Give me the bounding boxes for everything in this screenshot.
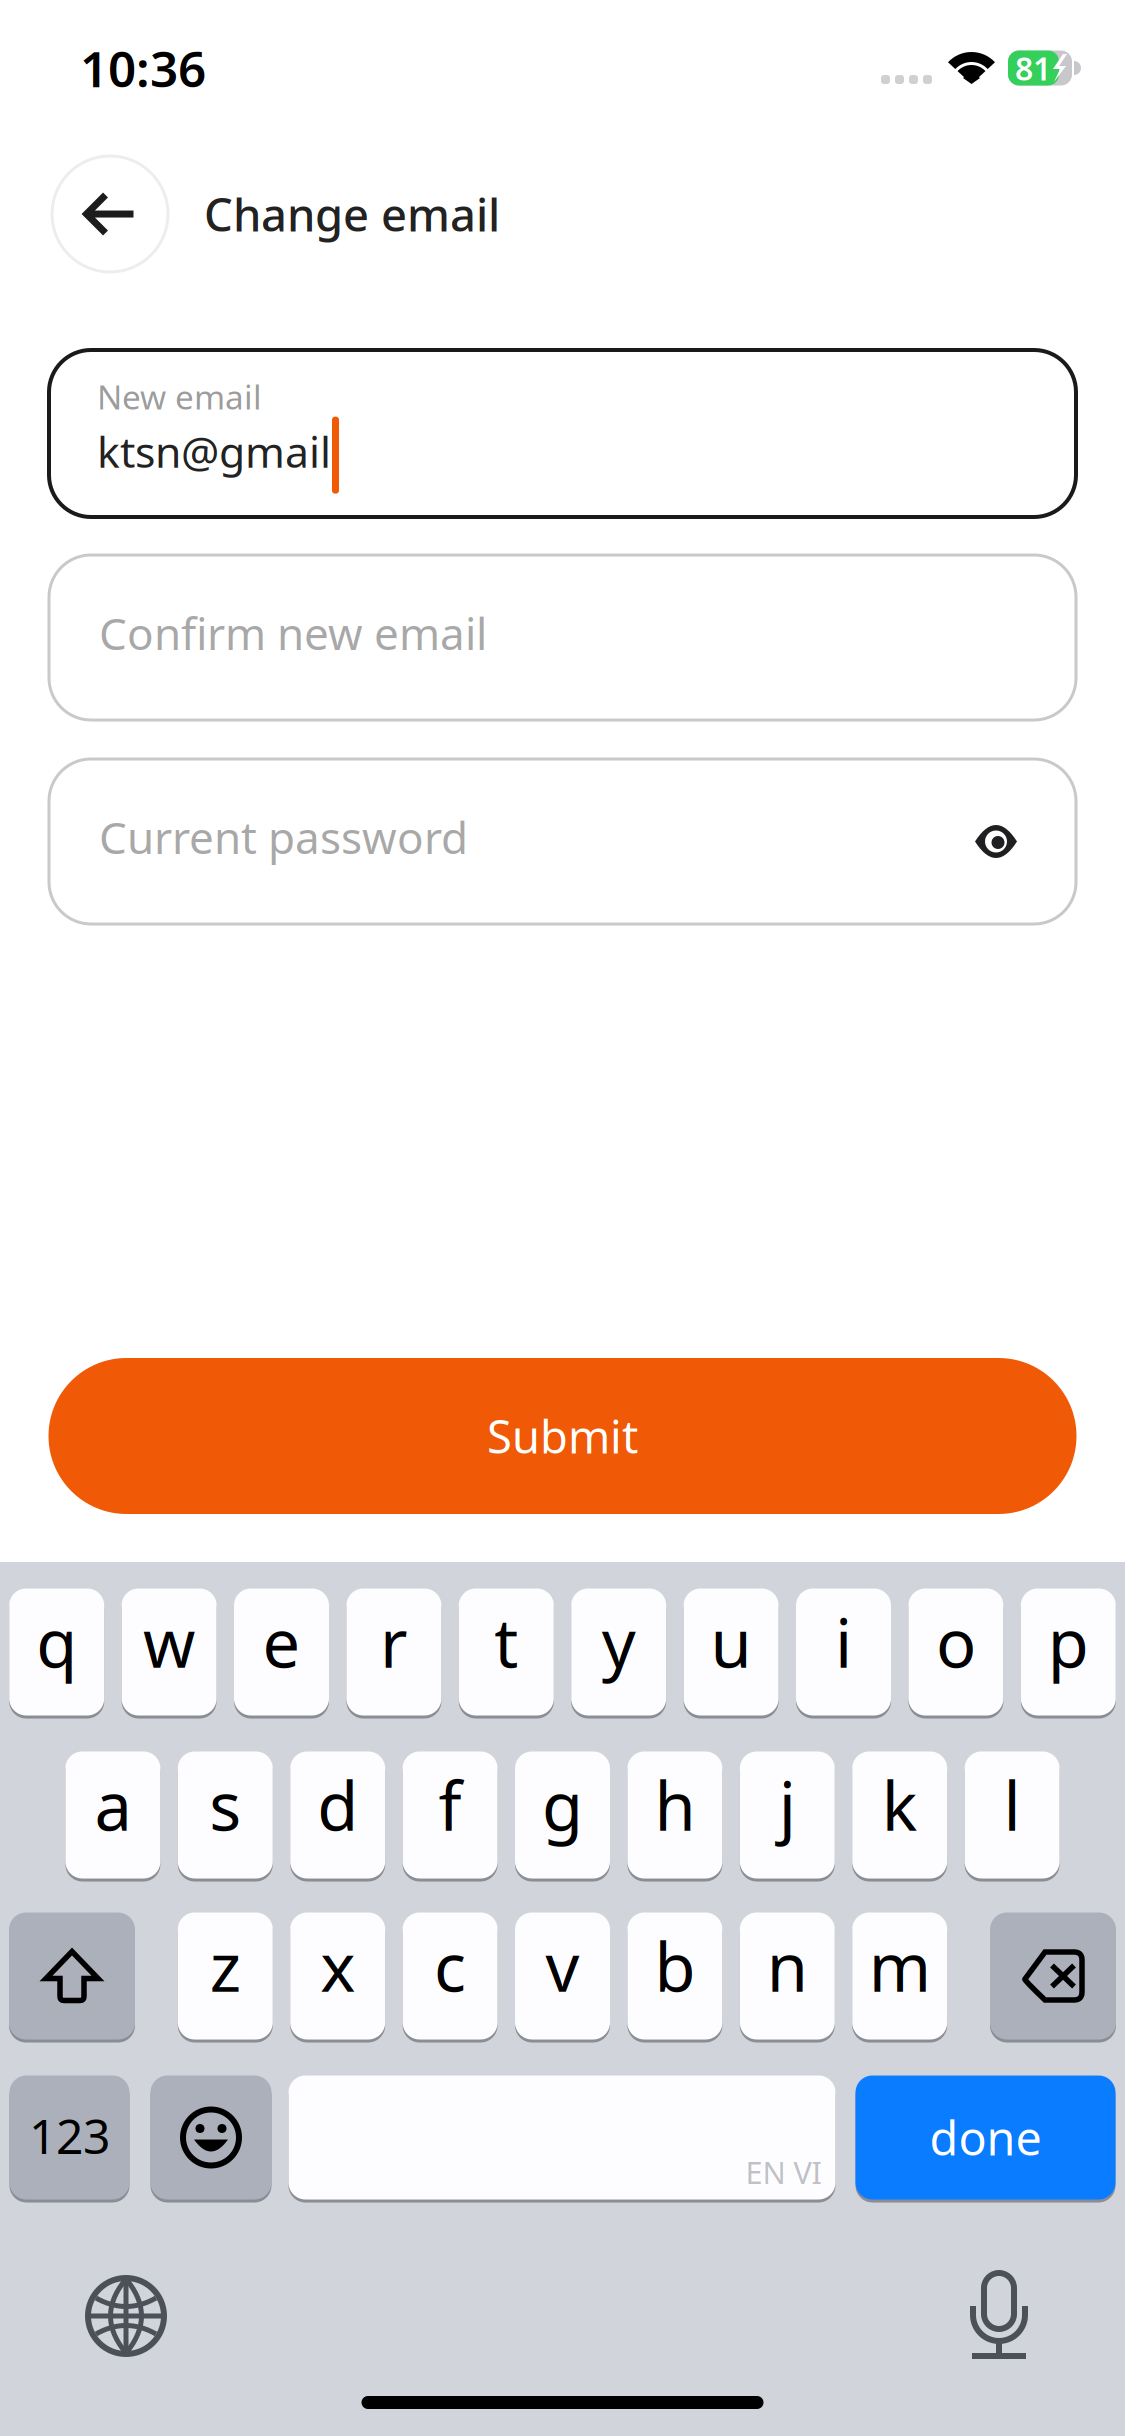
- staticText: l: [1004, 1761, 1021, 1849]
- staticText: done: [929, 2106, 1041, 2168]
- button[interactable]: q: [9, 1587, 104, 1717]
- button[interactable]: z: [178, 1911, 273, 2041]
- button[interactable]: d: [290, 1750, 385, 1880]
- button[interactable]: u: [684, 1587, 779, 1717]
- button[interactable]: v: [515, 1911, 610, 2041]
- button[interactable]: p: [1021, 1587, 1116, 1717]
- staticText: i: [835, 1598, 852, 1686]
- button[interactable]: m: [852, 1911, 947, 2041]
- button[interactable]: j: [740, 1750, 835, 1880]
- staticText: y: [602, 1598, 636, 1686]
- button[interactable]: Delete: [990, 1911, 1116, 2041]
- button[interactable]: Submit: [48, 1358, 1076, 1514]
- button[interactable]: 123: [9, 2074, 129, 2201]
- button[interactable]: x: [290, 1911, 385, 2041]
- button[interactable]: g: [515, 1750, 610, 1880]
- staticText: 81: [1015, 47, 1051, 89]
- staticText: ktsn@gmail: [97, 423, 331, 480]
- staticText: f: [439, 1761, 462, 1849]
- button[interactable]: l: [965, 1750, 1060, 1880]
- button[interactable]: Dictate: [970, 2273, 1028, 2359]
- staticText: c: [434, 1922, 466, 2010]
- staticText: a: [94, 1761, 131, 1849]
- button[interactable]: w: [122, 1587, 217, 1717]
- staticText: m: [869, 1922, 931, 2010]
- button[interactable]: e: [234, 1587, 329, 1717]
- staticText: 10:36: [80, 35, 206, 101]
- staticText: EN VI: [745, 2152, 821, 2192]
- button[interactable]: y: [571, 1587, 666, 1717]
- button[interactable]: done: [855, 2074, 1115, 2201]
- button[interactable]: Shift: [9, 1911, 135, 2041]
- staticText: e: [262, 1598, 300, 1686]
- staticText: r: [380, 1598, 408, 1686]
- button[interactable]: Space: [288, 2074, 835, 2201]
- staticText: k: [882, 1761, 918, 1849]
- button[interactable]: r: [346, 1587, 441, 1717]
- button[interactable]: Show password: [963, 808, 1029, 874]
- staticText: New email: [97, 374, 262, 419]
- staticText: u: [711, 1598, 752, 1686]
- staticText: d: [317, 1761, 358, 1849]
- staticText: q: [36, 1598, 77, 1686]
- staticText: n: [767, 1922, 808, 2010]
- button[interactable]: k: [852, 1750, 947, 1880]
- staticText: Confirm new email: [99, 604, 487, 662]
- staticText: o: [936, 1598, 976, 1686]
- staticText: z: [210, 1922, 241, 2010]
- staticText: h: [654, 1761, 695, 1849]
- staticText: 123: [29, 2104, 110, 2167]
- button[interactable]: h: [627, 1750, 722, 1880]
- staticText: b: [654, 1922, 695, 2010]
- staticText: Change email: [204, 184, 500, 244]
- button[interactable]: Change keyboard: [86, 2276, 166, 2356]
- staticText: w: [143, 1598, 195, 1686]
- button[interactable]: b: [627, 1911, 722, 2041]
- staticText: s: [209, 1761, 241, 1849]
- button[interactable]: n: [740, 1911, 835, 2041]
- staticText: j: [779, 1761, 796, 1849]
- staticText: Current password: [99, 808, 468, 866]
- button[interactable]: Emoji: [150, 2074, 271, 2201]
- button[interactable]: i: [796, 1587, 891, 1717]
- button[interactable]: c: [403, 1911, 498, 2041]
- button[interactable]: Back: [51, 155, 169, 273]
- button[interactable]: a: [65, 1750, 160, 1880]
- button[interactable]: s: [178, 1750, 273, 1880]
- button[interactable]: o: [908, 1587, 1003, 1717]
- staticText: p: [1048, 1598, 1089, 1686]
- staticText: x: [320, 1922, 355, 2010]
- staticText: v: [545, 1922, 579, 2010]
- button[interactable]: t: [459, 1587, 554, 1717]
- staticText: Submit: [487, 1406, 638, 1466]
- staticText: t: [494, 1598, 518, 1686]
- staticText: g: [542, 1761, 583, 1849]
- button[interactable]: f: [403, 1750, 498, 1880]
